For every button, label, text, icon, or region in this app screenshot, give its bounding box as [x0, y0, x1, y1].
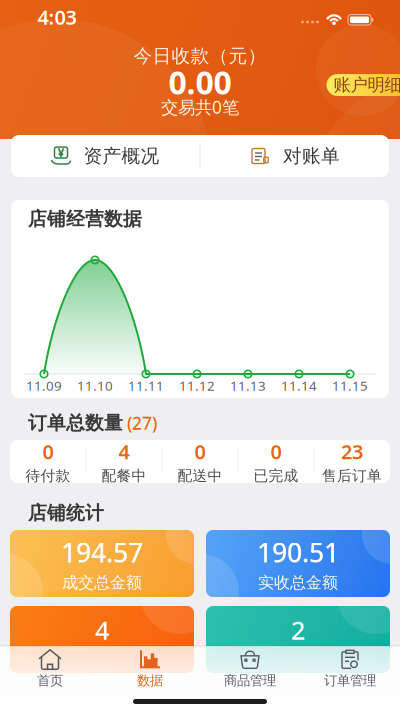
staticText: 11.10 — [77, 377, 113, 394]
staticText: 配餐中 — [101, 467, 146, 485]
staticText: 11.15 — [332, 377, 368, 394]
staticText: 23 — [341, 438, 363, 465]
staticText: 配送中 — [177, 467, 222, 485]
button[interactable]: 190.51 — [206, 530, 390, 597]
button[interactable]: 首页 — [0, 648, 100, 690]
staticText: 店铺统计 — [28, 501, 104, 524]
staticText: 数据 — [137, 672, 163, 689]
staticText: 订单总数量 — [28, 411, 123, 434]
staticText: 11.09 — [26, 377, 62, 394]
staticText: 2 — [291, 613, 305, 647]
button[interactable]: 0 — [238, 440, 314, 483]
button[interactable]: 商品管理 — [200, 648, 300, 690]
staticText: 0 — [194, 438, 205, 465]
staticText: 待付款 — [25, 467, 70, 485]
staticText: 4 — [118, 438, 129, 465]
staticText: 今日收款（元） — [133, 44, 266, 67]
button[interactable]: ¥ — [11, 135, 199, 177]
staticText: 4:03 — [37, 4, 76, 30]
staticText: 资产概况 — [83, 144, 159, 167]
button[interactable]: 4 — [10, 606, 194, 673]
button[interactable]: 2 — [206, 606, 390, 673]
staticText: 首页 — [37, 672, 63, 689]
button[interactable]: 4 — [86, 440, 162, 483]
staticText: 实收总金额 — [258, 573, 338, 593]
staticText: 11.11 — [128, 377, 164, 394]
staticText: ¥ — [57, 144, 64, 160]
staticText: 0 — [42, 438, 53, 465]
staticText: 账户明细 — [333, 74, 400, 96]
staticText: 商品管理 — [224, 672, 276, 689]
staticText: 订单管理 — [324, 672, 376, 689]
staticText: 11.14 — [281, 377, 317, 394]
staticText: 店铺经营数据 — [28, 207, 142, 230]
staticText: 对账单 — [283, 144, 340, 167]
staticText: 4 — [95, 613, 109, 647]
staticText: 190.51 — [257, 534, 339, 570]
staticText: 售后订单 — [322, 467, 382, 485]
staticText: 成交总金额 — [62, 573, 142, 593]
staticText: 交易共0笔 — [161, 95, 239, 118]
staticText: 已完成 — [253, 467, 298, 485]
button[interactable]: 194.57 — [10, 530, 194, 597]
button[interactable]: 23 — [314, 440, 390, 483]
staticText: 194.57 — [61, 534, 143, 570]
button[interactable]: 0 — [162, 440, 238, 483]
button[interactable]: 数据 — [100, 648, 200, 690]
staticText: 11.12 — [179, 377, 215, 394]
button[interactable]: 0 — [10, 440, 86, 483]
button[interactable]: 账户明细 — [326, 74, 400, 96]
staticText: 0.00 — [168, 61, 231, 103]
staticText: (27) — [127, 411, 157, 434]
staticText: 11.13 — [230, 377, 266, 394]
staticText: 0 — [270, 438, 281, 465]
button[interactable]: 订单管理 — [300, 648, 400, 690]
button[interactable]: 对账单 — [201, 135, 389, 177]
